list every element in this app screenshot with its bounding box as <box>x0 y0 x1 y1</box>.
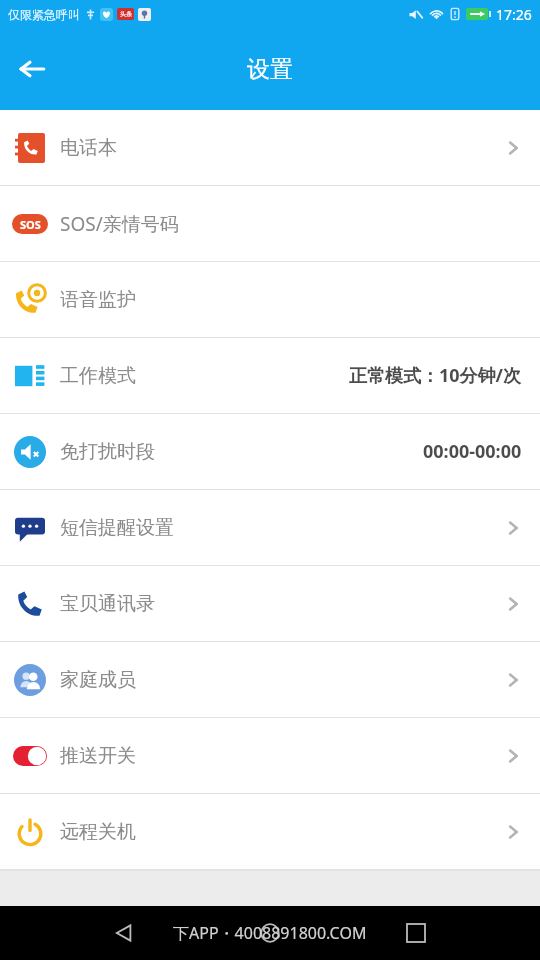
staticText: 正常模式：10分钟/次 <box>349 363 522 388</box>
staticText: 17:26 <box>496 5 532 24</box>
button[interactable]: 推送开关 <box>0 718 540 794</box>
staticText: 推送开关 <box>60 744 136 768</box>
button[interactable]: 宝贝通讯录 <box>0 566 540 642</box>
staticText: SOS/亲情号码 <box>60 211 179 237</box>
staticText: 短信提醒设置 <box>60 516 174 540</box>
staticText: 设置 <box>247 55 293 84</box>
button[interactable]: Home <box>248 911 292 955</box>
button[interactable]: Back <box>102 911 146 955</box>
button[interactable]: Back <box>6 43 58 95</box>
staticText: 电话本 <box>60 136 117 160</box>
staticText: 00:00-00:00 <box>423 439 522 464</box>
staticText: 免打扰时段 <box>60 440 155 464</box>
staticText: 下APP・4008891800.COM <box>173 922 367 944</box>
staticText: 头条 <box>120 10 132 18</box>
staticText: 宝贝通讯录 <box>60 592 155 616</box>
staticText: 家庭成员 <box>60 668 136 692</box>
button[interactable]: 电话本 <box>0 110 540 186</box>
staticText: 工作模式 <box>60 364 136 388</box>
button[interactable]: 免打扰时段 <box>0 414 540 490</box>
staticText: SOS <box>20 217 41 232</box>
staticText: 远程关机 <box>60 820 136 844</box>
button[interactable]: Recents <box>394 911 438 955</box>
button[interactable]: 语音监护 <box>0 262 540 338</box>
button[interactable]: 家庭成员 <box>0 642 540 718</box>
staticText: 仅限紧急呼叫 <box>8 7 80 22</box>
button[interactable]: 短信提醒设置 <box>0 490 540 566</box>
button[interactable]: SOS <box>0 186 540 262</box>
button[interactable]: 远程关机 <box>0 794 540 870</box>
button[interactable]: 工作模式 <box>0 338 540 414</box>
staticText: 语音监护 <box>60 288 136 312</box>
